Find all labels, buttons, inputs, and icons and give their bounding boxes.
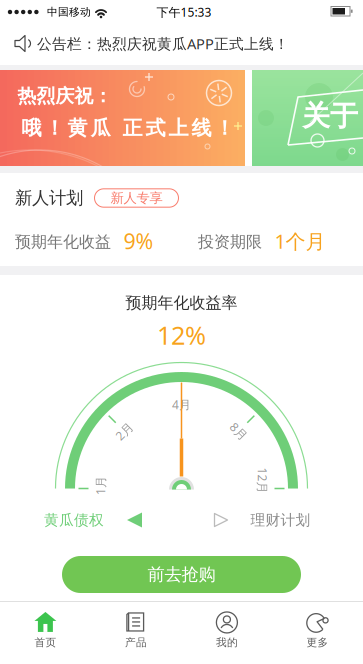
staticText: 首页 — [34, 636, 56, 649]
staticText: 热烈庆祝： — [17, 84, 112, 107]
staticText: 关于 — [302, 99, 358, 133]
button[interactable]: 我的 — [182, 603, 272, 657]
staticText: 产品 — [125, 636, 147, 649]
staticText: 4月 — [172, 396, 191, 412]
button[interactable]: 新人计划 — [0, 173, 363, 266]
button[interactable]: 关于 — [252, 70, 363, 166]
staticText: 2月 — [115, 423, 134, 439]
button[interactable]: 前去抢购 — [62, 556, 301, 593]
staticText: 理财计划 — [250, 511, 310, 529]
staticText: 中国移动 — [47, 5, 91, 18]
staticText: 新人计划 — [15, 187, 83, 209]
staticText: 我的 — [216, 636, 238, 649]
staticText: 12月 — [249, 472, 275, 488]
staticText: 下午15:33 — [156, 4, 211, 20]
button[interactable]: 产品 — [91, 603, 181, 657]
staticText: 1月 — [91, 477, 110, 493]
button[interactable]: 黄瓜债权 — [44, 511, 104, 529]
button[interactable]: 下一个 — [213, 512, 229, 528]
staticText: 预期年化收益 — [15, 232, 111, 252]
button[interactable]: 理财计划 — [250, 511, 310, 529]
staticText: 投资期限 — [198, 232, 262, 252]
staticText: 12% — [157, 318, 206, 352]
staticText: 更多 — [307, 636, 329, 649]
staticText: 哦！黄瓜 正式上线！ — [21, 116, 234, 140]
button[interactable]: 更多 — [273, 603, 363, 657]
staticText: 预期年化收益率 — [125, 293, 237, 313]
staticText: 公告栏：热烈庆祝黄瓜APP正式上线！ — [37, 34, 289, 53]
button[interactable]: 公告栏：热烈庆祝黄瓜APP正式上线！ — [0, 22, 363, 65]
button[interactable]: 首页 — [0, 603, 90, 657]
button[interactable]: 热烈庆祝： — [0, 70, 245, 166]
staticText: 新人专享 — [110, 190, 162, 206]
staticText: 9% — [123, 227, 153, 255]
staticText: 8月 — [229, 423, 248, 439]
button[interactable]: 上一个 — [127, 512, 143, 528]
staticText: 黄瓜债权 — [44, 511, 104, 529]
staticText: 1个月 — [274, 228, 325, 254]
staticText: 前去抢购 — [147, 564, 215, 585]
